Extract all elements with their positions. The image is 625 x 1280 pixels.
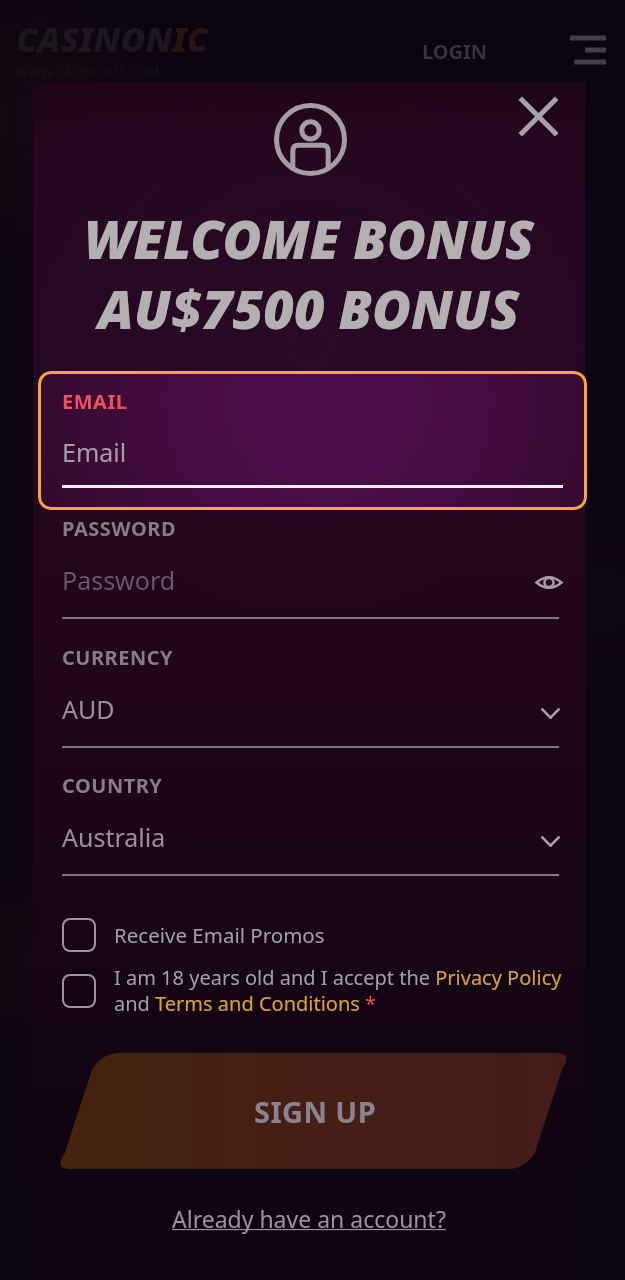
staticText: CASINONIC (16, 16, 209, 62)
staticText: EMAIL (62, 388, 128, 415)
staticText: Australia (62, 820, 166, 854)
button[interactable]: SIGN UP (47, 1050, 584, 1172)
button[interactable]: Close (517, 95, 560, 138)
staticText: COUNTRY (62, 772, 163, 799)
button[interactable]: EMAIL (38, 371, 587, 510)
button[interactable]: Show password (535, 573, 563, 592)
staticText: SIGN UP (254, 1092, 377, 1131)
button[interactable]: Menu (570, 35, 606, 67)
button[interactable]: Receive Email Promos (62, 917, 562, 953)
button[interactable]: LOGIN (422, 38, 488, 65)
staticText: PASSWORD (62, 515, 177, 542)
staticText: WWW.CASINONIC.COM (16, 62, 160, 80)
staticText: Password (62, 563, 176, 597)
staticText: I am 18 years old and I accept the Priva… (114, 964, 582, 1016)
button[interactable]: Open CURRENCY selector (541, 708, 560, 719)
staticText: AUD (62, 692, 115, 726)
button[interactable]: Already have an account? (172, 1203, 446, 1234)
staticText: Email (62, 435, 127, 469)
button[interactable]: I am 18 years old and I accept the Priva… (62, 964, 582, 1016)
staticText: AU$7500 BONUS (98, 272, 520, 344)
staticText: Receive Email Promos (114, 921, 325, 949)
staticText: WELCOME BONUS (84, 202, 535, 274)
staticText: CURRENCY (62, 644, 174, 671)
button[interactable]: Open COUNTRY selector (541, 836, 560, 847)
